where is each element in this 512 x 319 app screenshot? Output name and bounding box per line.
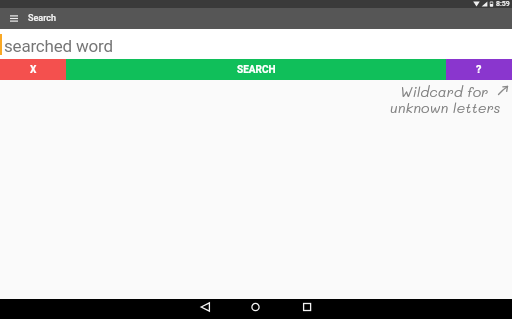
staticText: X — [30, 64, 37, 76]
button[interactable]: SEARCH — [66, 59, 446, 80]
button[interactable]: searched word — [0, 29, 512, 59]
button[interactable]: ? — [446, 59, 512, 80]
button[interactable]: X — [0, 59, 66, 80]
staticText: Search — [28, 13, 56, 24]
staticText: unknown letters — [390, 98, 501, 116]
staticText: searched word — [4, 36, 113, 56]
staticText: 8:59 — [496, 0, 510, 8]
button[interactable] — [170, 299, 341, 319]
button[interactable] — [0, 8, 28, 29]
staticText: SEARCH — [237, 64, 276, 76]
staticText: Wildcard for — [400, 82, 489, 100]
staticText: ? — [476, 63, 482, 76]
